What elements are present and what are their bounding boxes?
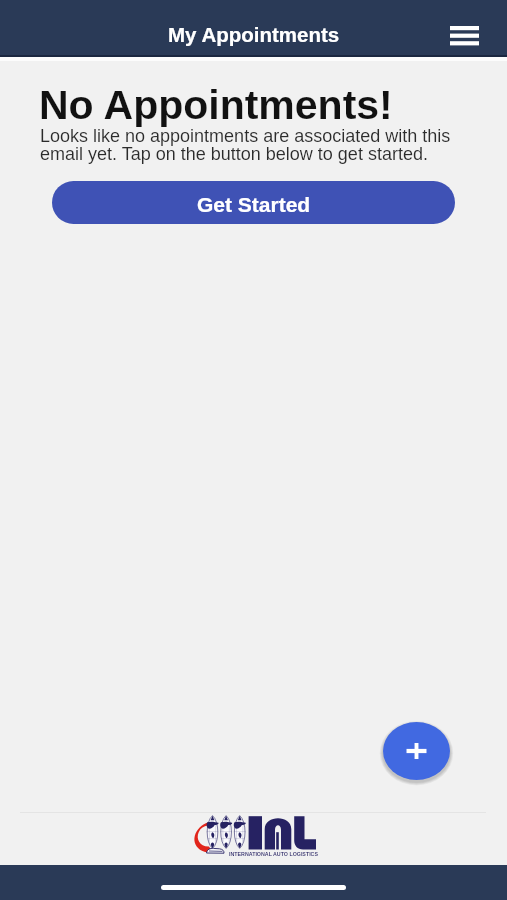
button[interactable]: Get Started — [52, 181, 455, 224]
staticText: No Appointments! — [39, 82, 393, 128]
staticText: My Appointments — [168, 23, 340, 46]
staticText: INTERNATIONAL AUTO LOGISTICS — [229, 851, 318, 857]
staticText: Looks like no appointments are associate… — [40, 126, 455, 164]
button[interactable]: Add appointment — [377, 716, 456, 786]
staticText: Get Started — [197, 193, 311, 216]
button[interactable]: Open navigation menu — [442, 13, 486, 57]
